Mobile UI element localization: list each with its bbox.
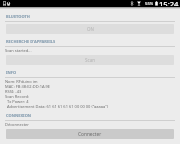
staticText: Connecter xyxy=(78,131,102,138)
staticText: Nom: RFduino im xyxy=(5,79,38,84)
staticText: INFO xyxy=(6,70,17,75)
staticText: BLUETOOTH xyxy=(6,14,30,19)
button[interactable]: Connecter xyxy=(6,129,174,139)
staticText: Advertisement Data: 61 61 61 61 61 00 00… xyxy=(7,104,109,109)
other: Bluetooth xyxy=(131,1,133,6)
staticText: Scan started... xyxy=(5,48,32,53)
other: Download xyxy=(7,1,10,6)
other: Signal xyxy=(137,1,141,6)
staticText: RECHERCHE D'APPAREILS xyxy=(6,39,56,44)
staticText: Scan Record: xyxy=(5,94,30,99)
staticText: MAC: FB:38:E2:DD:1A:9E xyxy=(5,84,51,89)
staticText: 15:24 xyxy=(159,0,179,6)
staticText: RSSI: -43 xyxy=(5,89,22,94)
staticText: Déconnecter xyxy=(5,122,29,127)
staticText: 55% xyxy=(145,1,154,7)
other: Battery xyxy=(155,1,158,6)
other: Screenshot xyxy=(3,1,6,6)
staticText: CONNEXION xyxy=(6,113,32,118)
staticText: Tx Power: 4 xyxy=(7,99,29,104)
staticText: Scan xyxy=(85,57,95,63)
staticText: ON xyxy=(87,26,94,32)
